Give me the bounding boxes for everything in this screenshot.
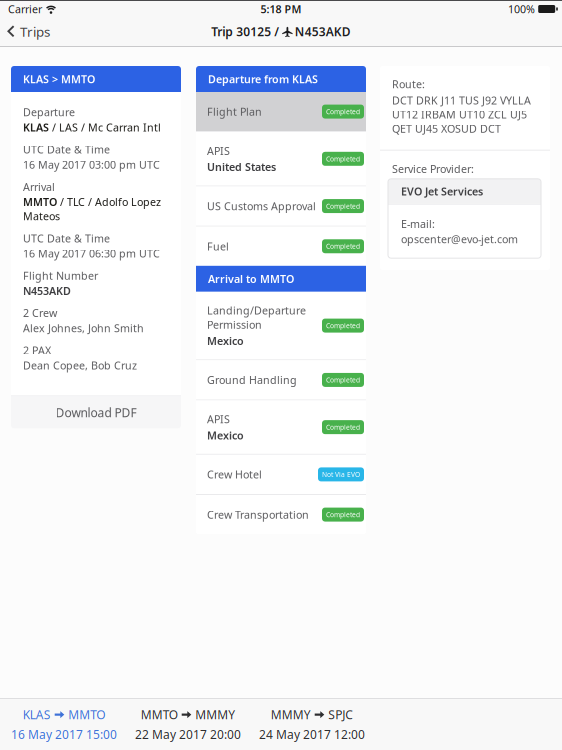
button[interactable]: Crew Transportation bbox=[196, 495, 366, 534]
staticText: 24 May 2017 12:00 bbox=[259, 726, 365, 742]
staticText: United States bbox=[207, 160, 276, 174]
staticText: SPJC bbox=[328, 707, 353, 722]
staticText: Completed bbox=[326, 321, 360, 330]
staticText: 2 Crew bbox=[23, 306, 57, 320]
staticText: APIS bbox=[207, 412, 230, 426]
button[interactable]: Crew Hotel bbox=[196, 455, 366, 494]
staticText: Completed bbox=[326, 423, 360, 432]
staticText: US Customs Approval bbox=[207, 199, 316, 213]
button[interactable]: Download PDF bbox=[11, 396, 181, 428]
staticText: EVO Jet Services bbox=[401, 184, 483, 198]
staticText: Departure bbox=[23, 105, 75, 119]
staticText: Mexico bbox=[207, 428, 244, 442]
staticText: 22 May 2017 20:00 bbox=[135, 726, 241, 742]
staticText: 100% bbox=[508, 2, 535, 16]
staticText: MMTO bbox=[141, 707, 178, 722]
button[interactable]: KLAS bbox=[2, 700, 126, 749]
staticText: E-mail: bbox=[401, 217, 435, 231]
staticText: Fuel bbox=[207, 239, 229, 253]
button[interactable]: Flight Plan bbox=[196, 92, 366, 131]
staticText: Completed bbox=[326, 242, 360, 251]
staticText: Completed bbox=[326, 202, 360, 211]
staticText: KLAS > MMTO bbox=[23, 72, 95, 86]
staticText: Route: bbox=[392, 77, 425, 91]
staticText: 16 May 2017 06:30 pm UTC bbox=[23, 246, 160, 260]
button[interactable]: US Customs Approval bbox=[196, 186, 366, 226]
staticText: Service Provider: bbox=[392, 162, 474, 176]
staticText: 2 PAX bbox=[23, 343, 51, 357]
staticText: Arrival bbox=[23, 180, 55, 194]
staticText: KLAS / LAS / Mc Carran Intl bbox=[23, 120, 161, 134]
staticText: Trips bbox=[20, 23, 50, 40]
staticText: Mexico bbox=[207, 334, 244, 348]
staticText: 5:18 PM bbox=[260, 2, 301, 16]
staticText: Completed bbox=[326, 375, 360, 384]
staticText: N453AKD bbox=[23, 284, 71, 298]
staticText: DCT DRK J11 TUS J92 VYLLA UT12 IRBAM UT1… bbox=[392, 93, 531, 136]
staticText: APIS bbox=[207, 144, 230, 158]
staticText: Completed bbox=[326, 510, 360, 519]
staticText: Carrier bbox=[8, 2, 42, 16]
staticText: Not Via EVO bbox=[322, 470, 360, 479]
button[interactable]: APIS bbox=[196, 132, 366, 185]
staticText: Landing/Departure Permission bbox=[207, 303, 306, 332]
button[interactable]: MMTO bbox=[126, 700, 250, 749]
button[interactable]: Ground Handling bbox=[196, 360, 366, 399]
staticText: 16 May 2017 15:00 bbox=[11, 726, 117, 742]
staticText: UTC Date & Time bbox=[23, 142, 110, 156]
staticText: MMMY bbox=[195, 707, 235, 722]
staticText: Flight Plan bbox=[207, 104, 262, 119]
staticText: Completed bbox=[326, 107, 360, 116]
staticText: Ground Handling bbox=[207, 373, 297, 387]
staticText: KLAS bbox=[23, 707, 51, 722]
staticText: Completed bbox=[326, 154, 360, 163]
button[interactable]: Trips bbox=[0, 18, 50, 45]
button[interactable]: Landing/Departure Permission bbox=[196, 292, 366, 359]
staticText: Flight Number bbox=[23, 268, 98, 283]
staticText: opscenter@evo-jet.com bbox=[401, 232, 518, 246]
staticText: Dean Copee, Bob Cruz bbox=[23, 358, 137, 372]
button[interactable]: MMMY bbox=[250, 700, 374, 749]
staticText: Download PDF bbox=[55, 404, 136, 420]
staticText: Arrival to MMTO bbox=[208, 272, 294, 286]
staticText: MMMY bbox=[271, 707, 311, 722]
staticText: Crew Hotel bbox=[207, 467, 262, 481]
staticText: MMTO bbox=[68, 707, 105, 722]
staticText: Trip 30125 / bbox=[211, 23, 279, 39]
staticText: MMTO / TLC / Adolfo Lopez Mateos bbox=[23, 195, 161, 223]
staticText: Alex Johnes, John Smith bbox=[23, 321, 144, 335]
staticText: UTC Date & Time bbox=[23, 231, 110, 245]
button[interactable]: APIS bbox=[196, 400, 366, 454]
staticText: Departure from KLAS bbox=[208, 72, 318, 86]
staticText: 16 May 2017 03:00 pm UTC bbox=[23, 157, 160, 172]
button[interactable]: Fuel bbox=[196, 227, 366, 266]
staticText: Crew Transportation bbox=[207, 507, 309, 522]
staticText: N453AKD bbox=[295, 23, 351, 39]
